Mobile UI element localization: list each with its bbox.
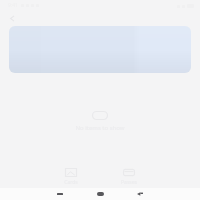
- button[interactable]: [9, 26, 191, 73]
- button[interactable]: Home: [92, 188, 108, 200]
- button[interactable]: Back: [132, 188, 148, 200]
- button[interactable]: Recent apps: [52, 188, 68, 200]
